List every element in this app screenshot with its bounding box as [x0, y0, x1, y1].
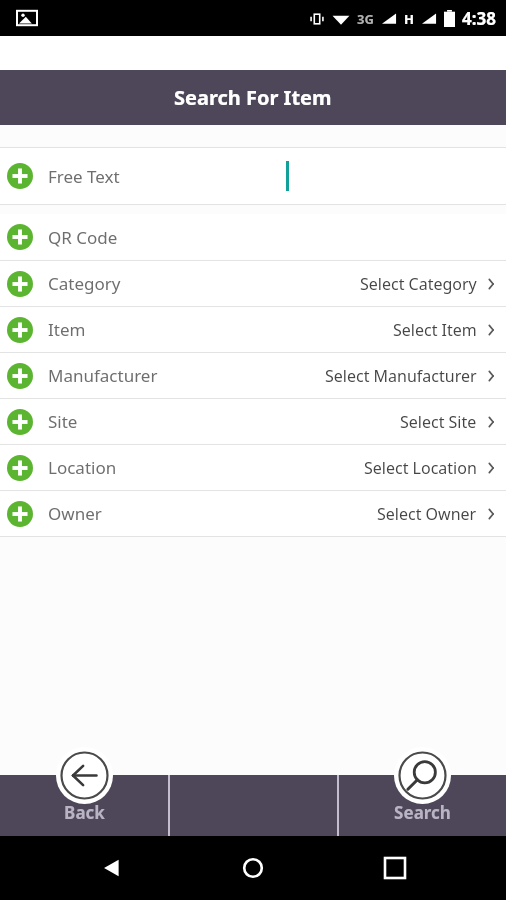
staticText: Back [64, 801, 105, 824]
staticText: H [404, 10, 414, 28]
button[interactable]: Search [338, 738, 506, 836]
button[interactable]: Back [0, 738, 168, 836]
other: Search [394, 747, 451, 804]
staticText: Site [48, 410, 78, 433]
staticText: Select Location [364, 457, 477, 479]
button[interactable]: Location [0, 445, 506, 490]
staticText: Search [394, 801, 451, 824]
staticText: Select Category [360, 273, 477, 295]
staticText: Owner [48, 502, 102, 525]
button[interactable]: QR Code [0, 214, 506, 260]
staticText: Search For Item [174, 84, 332, 111]
button[interactable]: Owner [0, 491, 506, 536]
staticText: Location [48, 456, 117, 479]
staticText: Select Manufacturer [325, 365, 477, 387]
staticText: 3G [357, 10, 374, 28]
button[interactable]: Category [0, 261, 506, 306]
button[interactable]: Item [0, 307, 506, 352]
button[interactable]: Site [0, 399, 506, 444]
button[interactable]: Manufacturer [0, 353, 506, 398]
staticText: Item [48, 318, 86, 341]
staticText: QR Code [48, 226, 118, 249]
staticText: Category [48, 272, 121, 295]
button[interactable]: Free Text [0, 148, 506, 204]
staticText: Manufacturer [48, 364, 158, 387]
staticText: Select Item [393, 319, 477, 341]
staticText: Select Owner [377, 503, 477, 525]
staticText: 4:38 [462, 7, 496, 30]
staticText: Select Site [400, 411, 477, 433]
staticText: Free Text [48, 165, 120, 188]
